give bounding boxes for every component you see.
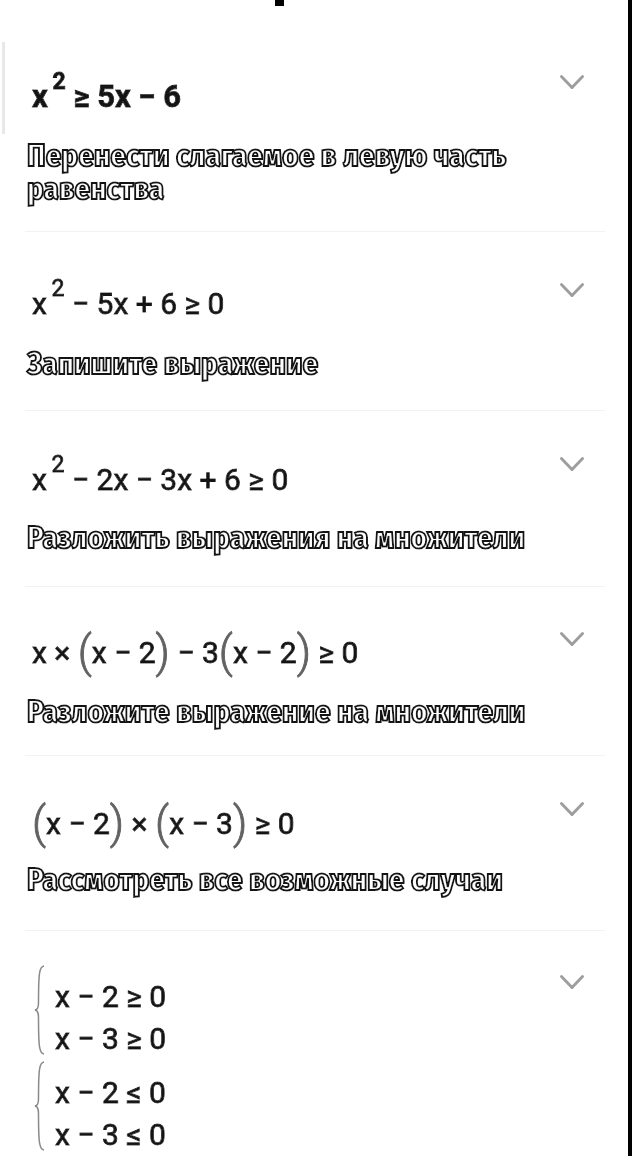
staticText: (x − 2) × (x − 3) ≥ 0: [32, 797, 295, 849]
staticText: x 2 − 5x + 6 ≥ 0: [32, 275, 225, 322]
staticText: x − 3 ≥ 0: [55, 1021, 167, 1056]
staticText: Запишите выражение: [27, 345, 567, 382]
staticText: Рассмотреть все возможные случаи: [27, 861, 567, 898]
button[interactable]: [0, 30, 632, 230]
button[interactable]: Expand step: [550, 960, 594, 1004]
staticText: x − 3 ≤ 0: [55, 1117, 166, 1152]
button[interactable]: [0, 232, 632, 410]
staticText: x 2 − 2x − 3x + 6 ≥ 0: [32, 451, 289, 498]
staticText: x × (x − 2) − 3(x − 2) ≥ 0: [32, 626, 359, 678]
button[interactable]: [0, 756, 632, 930]
staticText: x 2 − 5x + 6 ≥ 0: [32, 275, 225, 322]
staticText: x − 2 ≥ 0: [55, 979, 167, 1014]
staticText: x − 3 ≥ 0: [55, 1021, 167, 1056]
staticText: x − 2 ≤ 0: [55, 1075, 166, 1110]
button[interactable]: Expand step: [550, 787, 594, 831]
staticText: x 2 − 2x − 3x + 6 ≥ 0: [32, 451, 289, 498]
staticText: x 2 ≥ 5x − 6: [32, 68, 182, 115]
staticText: Разложите выражение на множители: [27, 693, 567, 730]
staticText: x − 2 ≤ 0: [55, 1075, 166, 1110]
button[interactable]: Expand step: [550, 60, 594, 104]
staticText: x × (x − 2) − 3(x − 2) ≥ 0: [32, 626, 359, 678]
button[interactable]: [0, 587, 632, 755]
staticText: x 2 ≥ 5x − 6: [32, 68, 182, 115]
staticText: (x − 2) × (x − 3) ≥ 0: [32, 797, 295, 849]
button[interactable]: [0, 931, 632, 1156]
staticText: Перенести слагаемое в левую часть равенс…: [27, 137, 567, 207]
button[interactable]: Expand step: [550, 268, 594, 312]
button[interactable]: Expand step: [550, 442, 594, 486]
button[interactable]: Expand step: [550, 617, 594, 661]
staticText: x − 3 ≤ 0: [55, 1117, 166, 1152]
staticText: x − 2 ≥ 0: [55, 979, 167, 1014]
button[interactable]: [0, 411, 632, 586]
staticText: Разложить выражения на множители: [27, 519, 567, 556]
